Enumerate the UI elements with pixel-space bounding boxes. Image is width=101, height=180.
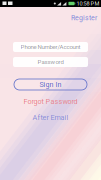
staticText: Password xyxy=(37,58,63,65)
button[interactable]: Register xyxy=(66,8,101,24)
button[interactable]: Sign In xyxy=(14,79,87,90)
button[interactable]: Forgot Password xyxy=(0,96,101,107)
staticText: After Email xyxy=(32,113,68,122)
button[interactable]: Password xyxy=(13,57,88,67)
staticText: Sign In xyxy=(39,80,61,89)
staticText: 10:58 PM xyxy=(76,0,99,7)
staticText: Phone Number/Account xyxy=(20,43,80,50)
button[interactable]: Phone Number/Account xyxy=(13,42,88,52)
staticText: Register xyxy=(71,14,97,22)
button[interactable]: After Email xyxy=(0,112,101,123)
staticText: Forgot Password xyxy=(23,97,77,106)
